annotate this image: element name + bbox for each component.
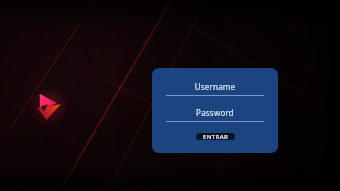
- staticText: ENTRAR: [203, 133, 229, 140]
- other: App logo: [36, 92, 62, 120]
- button[interactable]: Username: [166, 81, 264, 96]
- button[interactable]: Password: [166, 107, 264, 122]
- button[interactable]: ENTRAR: [196, 133, 235, 140]
- staticText: Username: [166, 81, 264, 92]
- staticText: Password: [166, 107, 264, 118]
